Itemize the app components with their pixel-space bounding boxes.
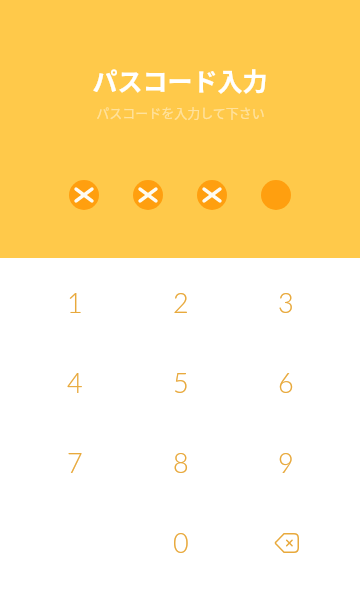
staticText: 6 xyxy=(278,366,294,398)
staticText: 4 xyxy=(67,366,83,398)
staticText: 5 xyxy=(173,366,189,398)
button[interactable]: 9 xyxy=(246,424,326,500)
staticText: パスコード入力 xyxy=(92,62,268,98)
button[interactable]: 5 xyxy=(141,344,221,420)
staticText: 7 xyxy=(67,446,83,478)
button[interactable]: 7 xyxy=(35,424,115,500)
staticText: 2 xyxy=(173,286,189,318)
staticText: 0 xyxy=(173,526,189,558)
staticText: パスコードを入力して下さい xyxy=(96,103,265,122)
staticText: 1 xyxy=(67,286,83,318)
button[interactable]: 4 xyxy=(35,344,115,420)
button[interactable]: 0 xyxy=(141,504,221,580)
button[interactable]: 2 xyxy=(141,264,221,340)
staticText: 8 xyxy=(173,446,189,478)
button[interactable]: 8 xyxy=(141,424,221,500)
button[interactable]: 6 xyxy=(246,344,326,420)
button[interactable]: 1 xyxy=(35,264,115,340)
button[interactable]: Delete last digit xyxy=(246,504,326,580)
staticText: 9 xyxy=(278,446,294,478)
staticText: 3 xyxy=(278,286,294,318)
button[interactable]: 3 xyxy=(246,264,326,340)
